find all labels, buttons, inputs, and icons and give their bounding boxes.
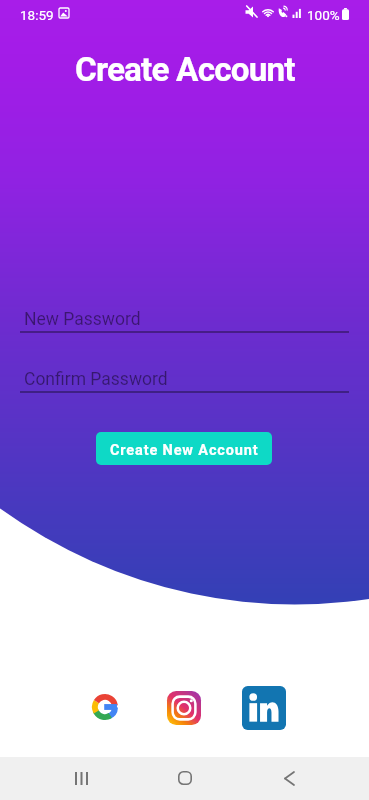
staticText: 100% (307, 7, 340, 23)
staticText: Create New Account (110, 442, 259, 459)
button[interactable]: Sign in with Instagram (167, 691, 201, 725)
button[interactable]: Home (164, 757, 206, 799)
button[interactable]: Recents (60, 757, 102, 799)
staticText: Confirm Password (24, 369, 168, 390)
button[interactable]: Confirm Password (20, 361, 349, 393)
staticText: New Password (24, 309, 141, 330)
button[interactable]: Create New Account (96, 432, 272, 465)
button[interactable]: New Password (20, 301, 349, 333)
staticText: 18:59 (20, 7, 54, 23)
button[interactable]: Sign in with LinkedIn (242, 686, 286, 730)
button[interactable]: Sign in with Google (92, 694, 118, 720)
button[interactable]: Back (268, 757, 310, 799)
staticText: Create Account (75, 50, 295, 89)
